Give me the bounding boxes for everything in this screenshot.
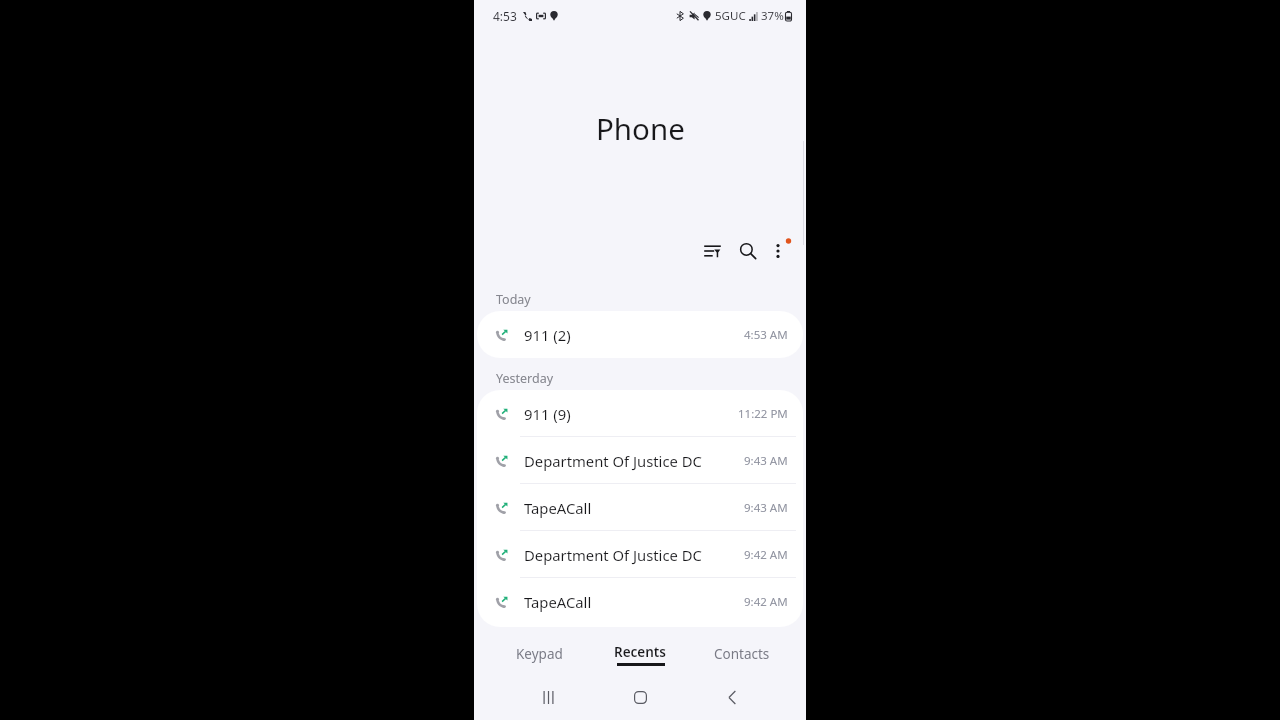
staticText: 4:53 AM xyxy=(744,327,788,343)
button[interactable]: Back xyxy=(686,684,778,710)
staticText: 37% xyxy=(761,8,784,24)
button[interactable]: TapeACall xyxy=(477,578,803,625)
staticText: 9:43 AM xyxy=(744,500,788,516)
button[interactable]: Contacts xyxy=(691,638,792,670)
button[interactable]: Search xyxy=(731,234,765,268)
staticText: Department Of Justice DC xyxy=(524,545,702,565)
staticText: TapeACall xyxy=(524,592,592,612)
staticText: UC xyxy=(730,8,746,24)
staticText: 911 (9) xyxy=(524,404,571,424)
staticText: TapeACall xyxy=(524,498,592,518)
button[interactable]: Recents xyxy=(590,638,691,670)
button[interactable]: More options xyxy=(761,234,795,268)
staticText: 4:53 xyxy=(493,8,517,24)
button[interactable]: Home xyxy=(594,684,686,710)
staticText: Department Of Justice DC xyxy=(524,451,702,471)
staticText: 9:43 AM xyxy=(744,453,788,469)
button[interactable]: TapeACall xyxy=(477,484,803,531)
staticText: 9:42 AM xyxy=(744,594,788,610)
staticText: Yesterday xyxy=(496,370,554,387)
button[interactable]: Sort xyxy=(695,234,729,268)
staticText: Keypad xyxy=(516,645,563,663)
staticText: Contacts xyxy=(714,645,770,663)
staticText: Phone xyxy=(596,108,685,148)
staticText: Recents xyxy=(614,643,667,661)
button[interactable]: Keypad xyxy=(488,638,590,670)
staticText: 5G xyxy=(715,8,730,24)
button[interactable]: Department Of Justice DC xyxy=(477,531,803,578)
button[interactable]: Department Of Justice DC xyxy=(477,437,803,484)
staticText: 911 (2) xyxy=(524,325,571,345)
staticText: 9:42 AM xyxy=(744,547,788,563)
button[interactable]: 911 (2) xyxy=(477,311,803,358)
button[interactable]: Recent apps xyxy=(502,684,594,710)
staticText: 11:22 PM xyxy=(738,406,788,422)
button[interactable]: 911 (9) xyxy=(477,390,803,437)
staticText: Today xyxy=(496,291,531,308)
